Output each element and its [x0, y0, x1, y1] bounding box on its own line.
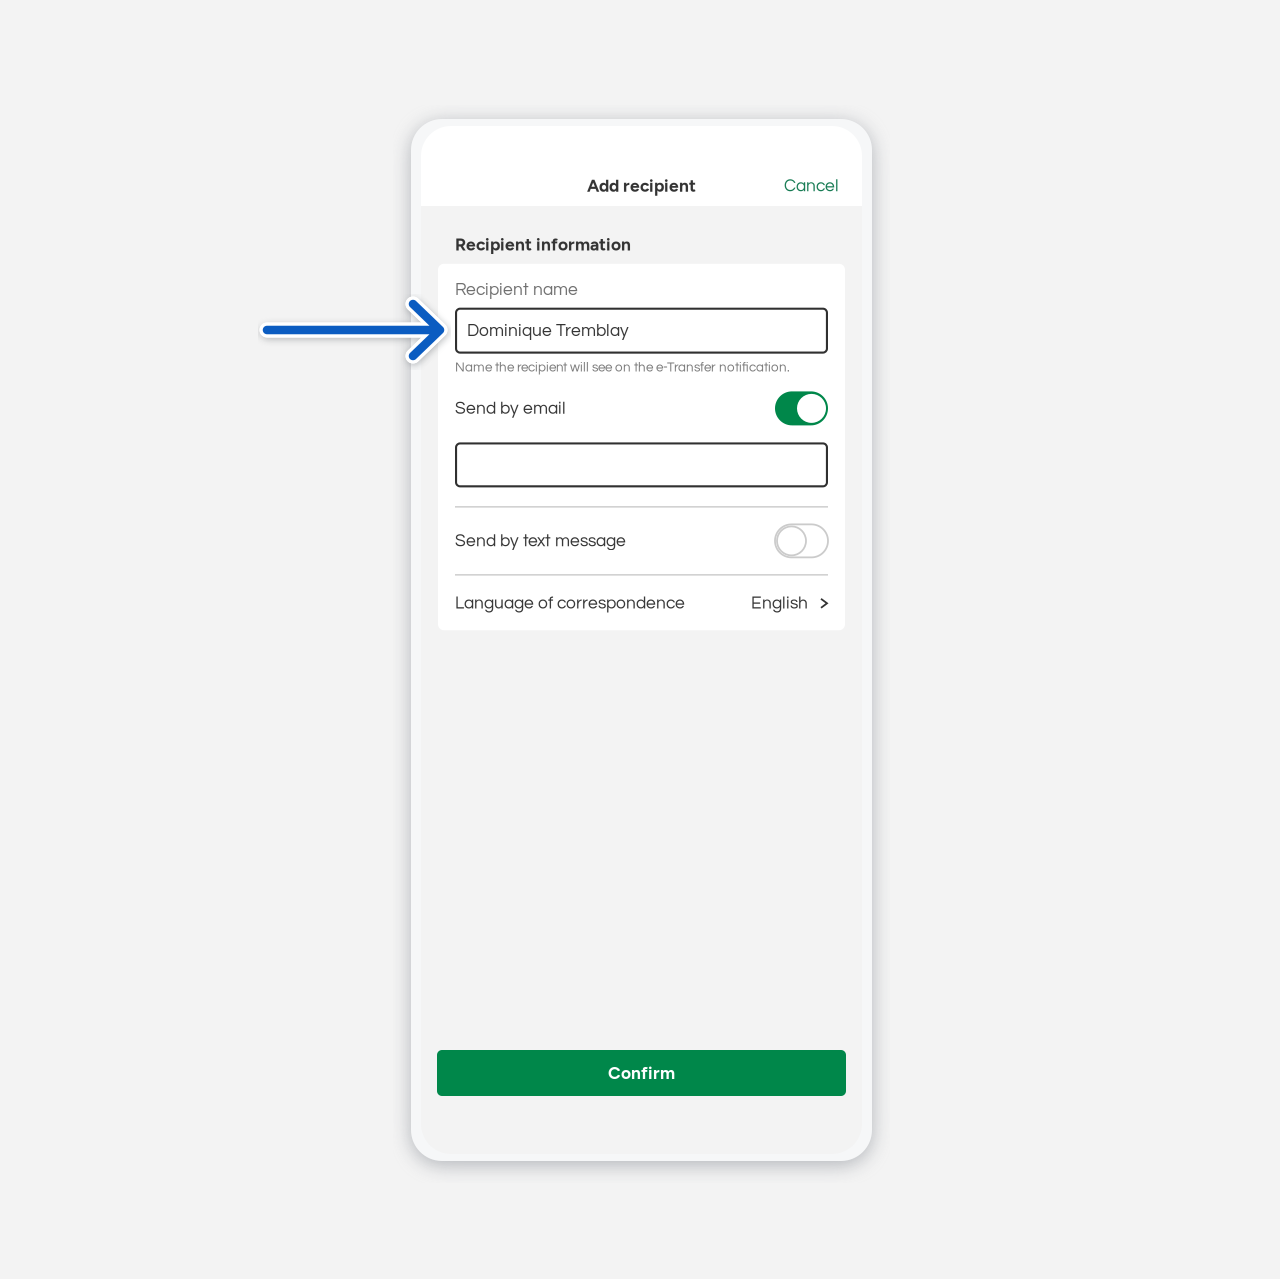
- staticText: Recipient information: [455, 234, 631, 255]
- staticText: Send by email: [455, 399, 566, 417]
- button[interactable]: Language of correspondence: [455, 575, 828, 630]
- staticText: Language of correspondence: [455, 594, 685, 612]
- staticText: English: [751, 594, 808, 612]
- staticText: Recipient name: [455, 281, 578, 299]
- staticText: Dominique Tremblay: [467, 322, 629, 340]
- staticText: Name the recipient will see on the e-Tra…: [455, 361, 790, 374]
- button[interactable]: Send by email: [775, 391, 828, 425]
- button[interactable]: Confirm: [437, 1050, 846, 1096]
- staticText: Confirm: [608, 1063, 675, 1083]
- staticText: Cancel: [784, 177, 839, 195]
- button[interactable]: Dominique Tremblay: [455, 308, 828, 354]
- button[interactable]: Email address: [455, 442, 828, 487]
- staticText: Send by text message: [455, 532, 626, 550]
- button[interactable]: Cancel: [776, 169, 862, 206]
- staticText: Add recipient: [587, 175, 696, 196]
- button[interactable]: Send by text message: [775, 524, 828, 557]
